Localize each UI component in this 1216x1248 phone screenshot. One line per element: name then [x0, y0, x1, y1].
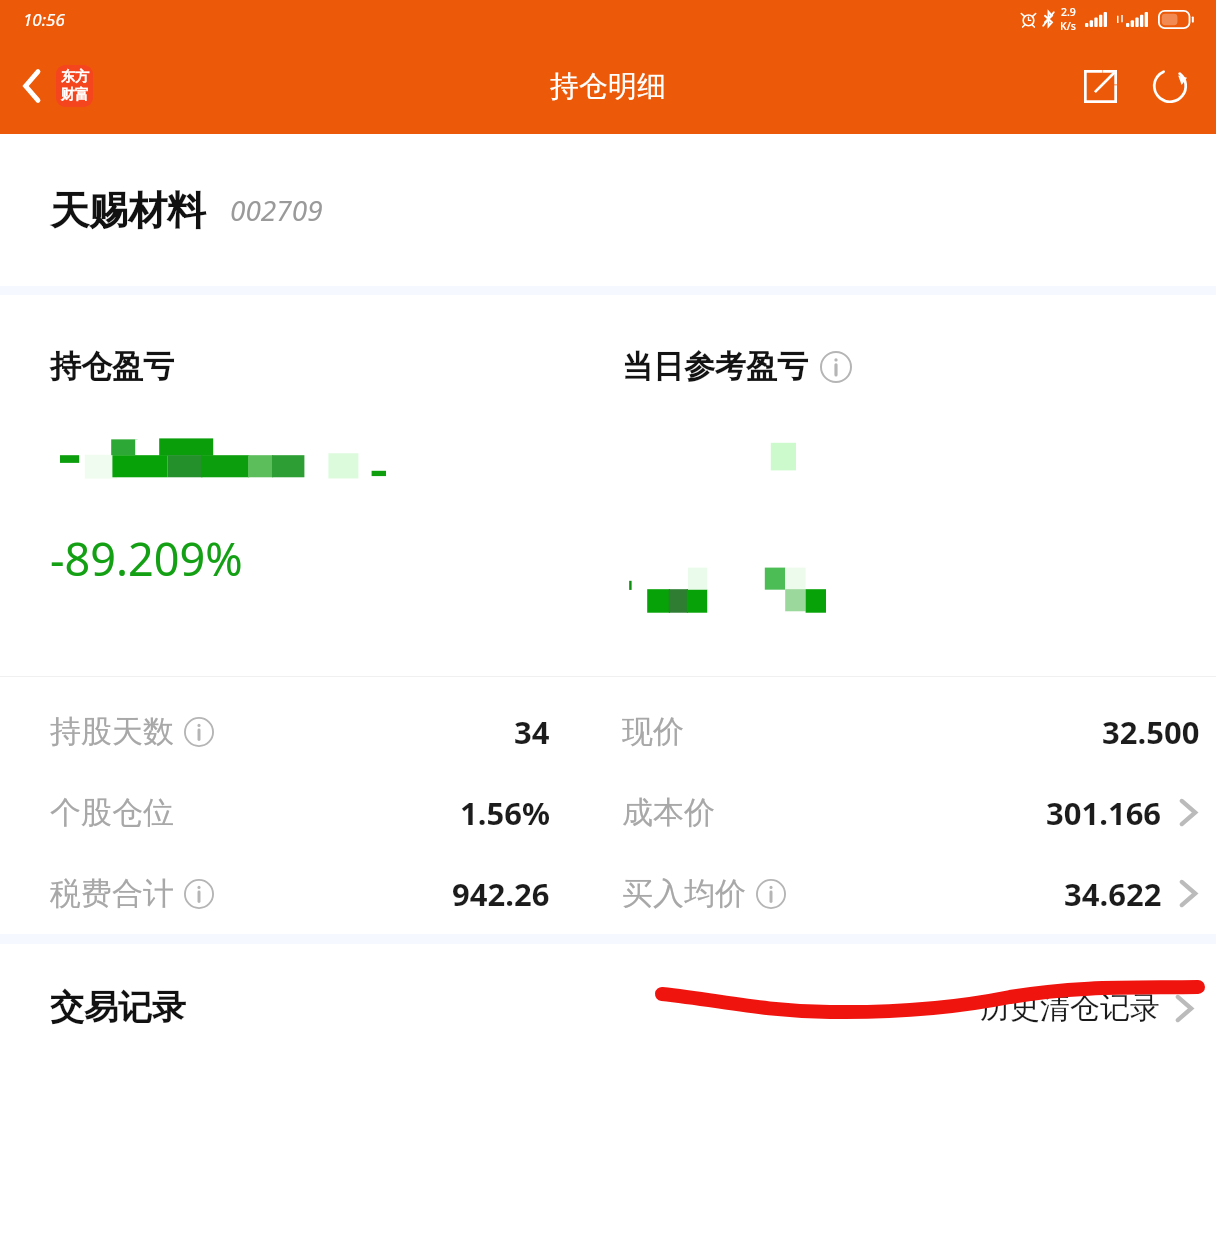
button[interactable]: Back: [0, 57, 101, 115]
button[interactable]: 税费合计: [0, 853, 608, 934]
staticText: 历史清仓记录: [980, 989, 1160, 1027]
staticText: 成本价: [622, 793, 715, 832]
staticText: 1.56%: [460, 792, 550, 834]
button[interactable]: 个股仓位: [0, 772, 608, 853]
staticText: 32.500: [1102, 711, 1200, 753]
staticText: 东方: [61, 68, 89, 86]
button[interactable]: 成本价: [608, 772, 1216, 853]
staticText: 002709: [230, 191, 323, 229]
staticText: -89.209%: [50, 528, 243, 589]
staticText: 天赐材料: [50, 186, 206, 235]
staticText: 34: [514, 711, 550, 753]
staticText: 301.166: [1046, 792, 1162, 834]
button[interactable]: Share: [1070, 56, 1130, 116]
button[interactable]: 交易记录: [0, 974, 198, 1041]
button[interactable]: 现价: [608, 691, 1216, 772]
staticText: 现价: [622, 712, 684, 751]
staticText: 34.622: [1064, 873, 1162, 915]
staticText: 持仓盈亏: [50, 347, 174, 386]
button[interactable]: 持仓盈亏: [0, 295, 608, 676]
staticText: K/s: [1060, 19, 1076, 33]
button[interactable]: 天赐材料: [0, 134, 1216, 286]
staticText: 2.9: [1061, 5, 1076, 19]
staticText: 交易记录: [50, 986, 186, 1029]
staticText: 当日参考盈亏: [622, 347, 808, 386]
staticText: 10:56: [23, 8, 65, 31]
staticText: 个股仓位: [50, 793, 174, 832]
staticText: 财富: [61, 86, 89, 104]
staticText: 持仓明细: [550, 68, 666, 105]
button[interactable]: 当日参考盈亏: [608, 295, 1216, 676]
staticText: 税费合计: [50, 874, 174, 913]
staticText: 942.26: [452, 873, 550, 915]
staticText: 持股天数: [50, 712, 174, 751]
button[interactable]: Refresh: [1140, 56, 1200, 116]
button[interactable]: 历史清仓记录: [968, 977, 1216, 1039]
button[interactable]: 买入均价: [608, 853, 1216, 934]
button[interactable]: 持股天数: [0, 691, 608, 772]
staticText: 买入均价: [622, 874, 746, 913]
